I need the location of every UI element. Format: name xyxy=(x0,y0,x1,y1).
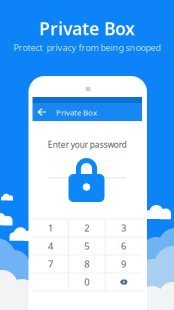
button[interactable]: 9 xyxy=(105,255,142,273)
staticText: 3 xyxy=(121,222,126,234)
staticText: 9 xyxy=(121,258,126,270)
staticText: 2 xyxy=(84,222,89,234)
staticText: 4 xyxy=(48,240,53,252)
button[interactable]: 4 xyxy=(32,237,68,255)
staticText: 7 xyxy=(48,258,53,270)
button[interactable]: Delete xyxy=(105,273,142,291)
button[interactable]: 1 xyxy=(32,219,68,237)
staticText: Protect privacy from being snooped xyxy=(13,41,160,54)
staticText: 0 xyxy=(84,276,89,288)
staticText: Private Box xyxy=(39,17,135,40)
button[interactable]: 8 xyxy=(68,255,105,273)
button[interactable]: Back xyxy=(33,104,49,120)
button[interactable]: 0 xyxy=(68,273,105,291)
staticText: Private Box xyxy=(56,107,97,118)
button[interactable]: 5 xyxy=(68,237,105,255)
staticText: 5 xyxy=(84,240,89,252)
button[interactable]: 6 xyxy=(105,237,142,255)
staticText: 6 xyxy=(121,240,126,252)
button[interactable]: 3 xyxy=(105,219,142,237)
staticText: Enter your password xyxy=(48,139,127,150)
staticText: 8 xyxy=(84,258,89,270)
button[interactable]: 7 xyxy=(32,255,68,273)
button[interactable]: 2 xyxy=(68,219,105,237)
staticText: 1 xyxy=(48,222,53,234)
